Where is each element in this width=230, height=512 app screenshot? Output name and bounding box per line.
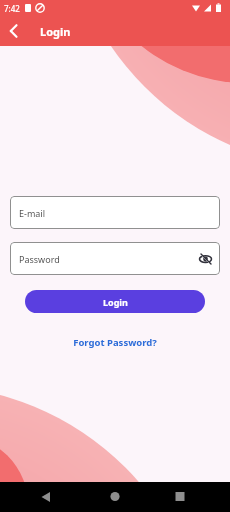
button[interactable]: Forgot Password? <box>0 336 230 349</box>
button[interactable]: Login <box>25 290 205 313</box>
staticText: 7:42 <box>4 3 20 14</box>
staticText: Login <box>40 24 71 39</box>
button[interactable]: E-mail <box>10 196 220 229</box>
button[interactable]: Password <box>10 242 220 275</box>
staticText: Password <box>19 253 60 265</box>
button[interactable] <box>0 16 26 46</box>
staticText: Login <box>103 296 128 308</box>
staticText: E-mail <box>19 207 46 219</box>
